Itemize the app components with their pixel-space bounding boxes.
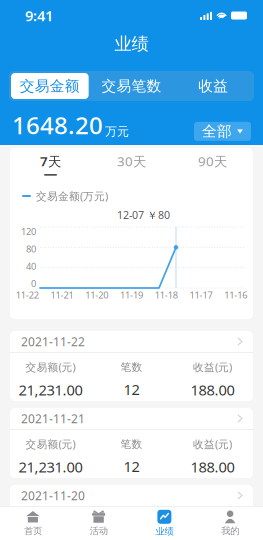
- staticText: 业绩: [155, 526, 173, 537]
- staticText: 11-18: [155, 289, 178, 301]
- button[interactable]: 2021-11-21: [10, 408, 253, 429]
- staticText: 12: [123, 457, 139, 476]
- staticText: 收益(元): [193, 360, 232, 374]
- staticText: 21,231.00: [18, 457, 82, 477]
- button[interactable]: 30天: [91, 148, 172, 180]
- staticText: 12-07 ￥80: [117, 208, 170, 222]
- staticText: 80: [26, 243, 36, 255]
- button[interactable]: 交易金额: [9, 71, 91, 101]
- staticText: 11-22: [16, 289, 39, 301]
- staticText: 全部: [202, 122, 232, 140]
- staticText: 188.00: [190, 380, 234, 400]
- staticText: 11-19: [120, 289, 143, 301]
- button[interactable]: 2021-11-20: [10, 485, 253, 540]
- staticText: 120: [21, 225, 36, 238]
- staticText: 21,231.00: [18, 380, 82, 400]
- staticText: 业绩: [114, 33, 148, 55]
- staticText: 11-20: [85, 289, 108, 301]
- staticText: 188.00: [190, 457, 234, 477]
- button[interactable]: 业绩: [131, 507, 197, 540]
- staticText: 万元: [105, 124, 129, 139]
- staticText: 交易额(元): [25, 360, 75, 374]
- staticText: 30天: [117, 152, 146, 170]
- staticText: 交易金额: [20, 77, 80, 95]
- staticText: 7天: [40, 152, 61, 170]
- staticText: 交易笔数: [101, 77, 161, 95]
- staticText: 90天: [198, 152, 227, 170]
- staticText: 9:41: [25, 6, 53, 25]
- button[interactable]: 2021-11-22: [10, 331, 253, 352]
- staticText: 2021-11-20: [21, 487, 85, 503]
- staticText: 交易额(元): [25, 437, 75, 451]
- staticText: 交易金额(万元): [36, 189, 108, 203]
- staticText: 11-16: [224, 289, 247, 301]
- button[interactable]: 首页: [0, 507, 66, 540]
- staticText: 笔数: [120, 437, 142, 451]
- button[interactable]: 活动: [66, 507, 132, 540]
- staticText: 收益: [198, 77, 228, 95]
- button[interactable]: 90天: [172, 148, 253, 180]
- button[interactable]: 交易笔数: [91, 71, 172, 101]
- staticText: 2021-11-22: [21, 333, 85, 349]
- staticText: 笔数: [120, 360, 142, 374]
- staticText: 2021-11-21: [21, 410, 85, 426]
- button[interactable]: 收益: [172, 71, 254, 101]
- staticText: 11-21: [51, 289, 74, 301]
- staticText: 首页: [24, 525, 42, 537]
- staticText: 12: [123, 380, 139, 399]
- staticText: 40: [26, 260, 36, 272]
- staticText: 我的: [221, 525, 239, 537]
- staticText: 1648.20: [12, 109, 103, 141]
- button[interactable]: 全部: [194, 122, 251, 141]
- button[interactable]: 我的: [197, 507, 263, 540]
- button[interactable]: 7天: [10, 148, 91, 180]
- staticText: 收益(元): [193, 437, 232, 451]
- staticText: 活动: [90, 525, 108, 537]
- staticText: 0: [31, 277, 36, 290]
- staticText: 11-17: [189, 289, 212, 301]
